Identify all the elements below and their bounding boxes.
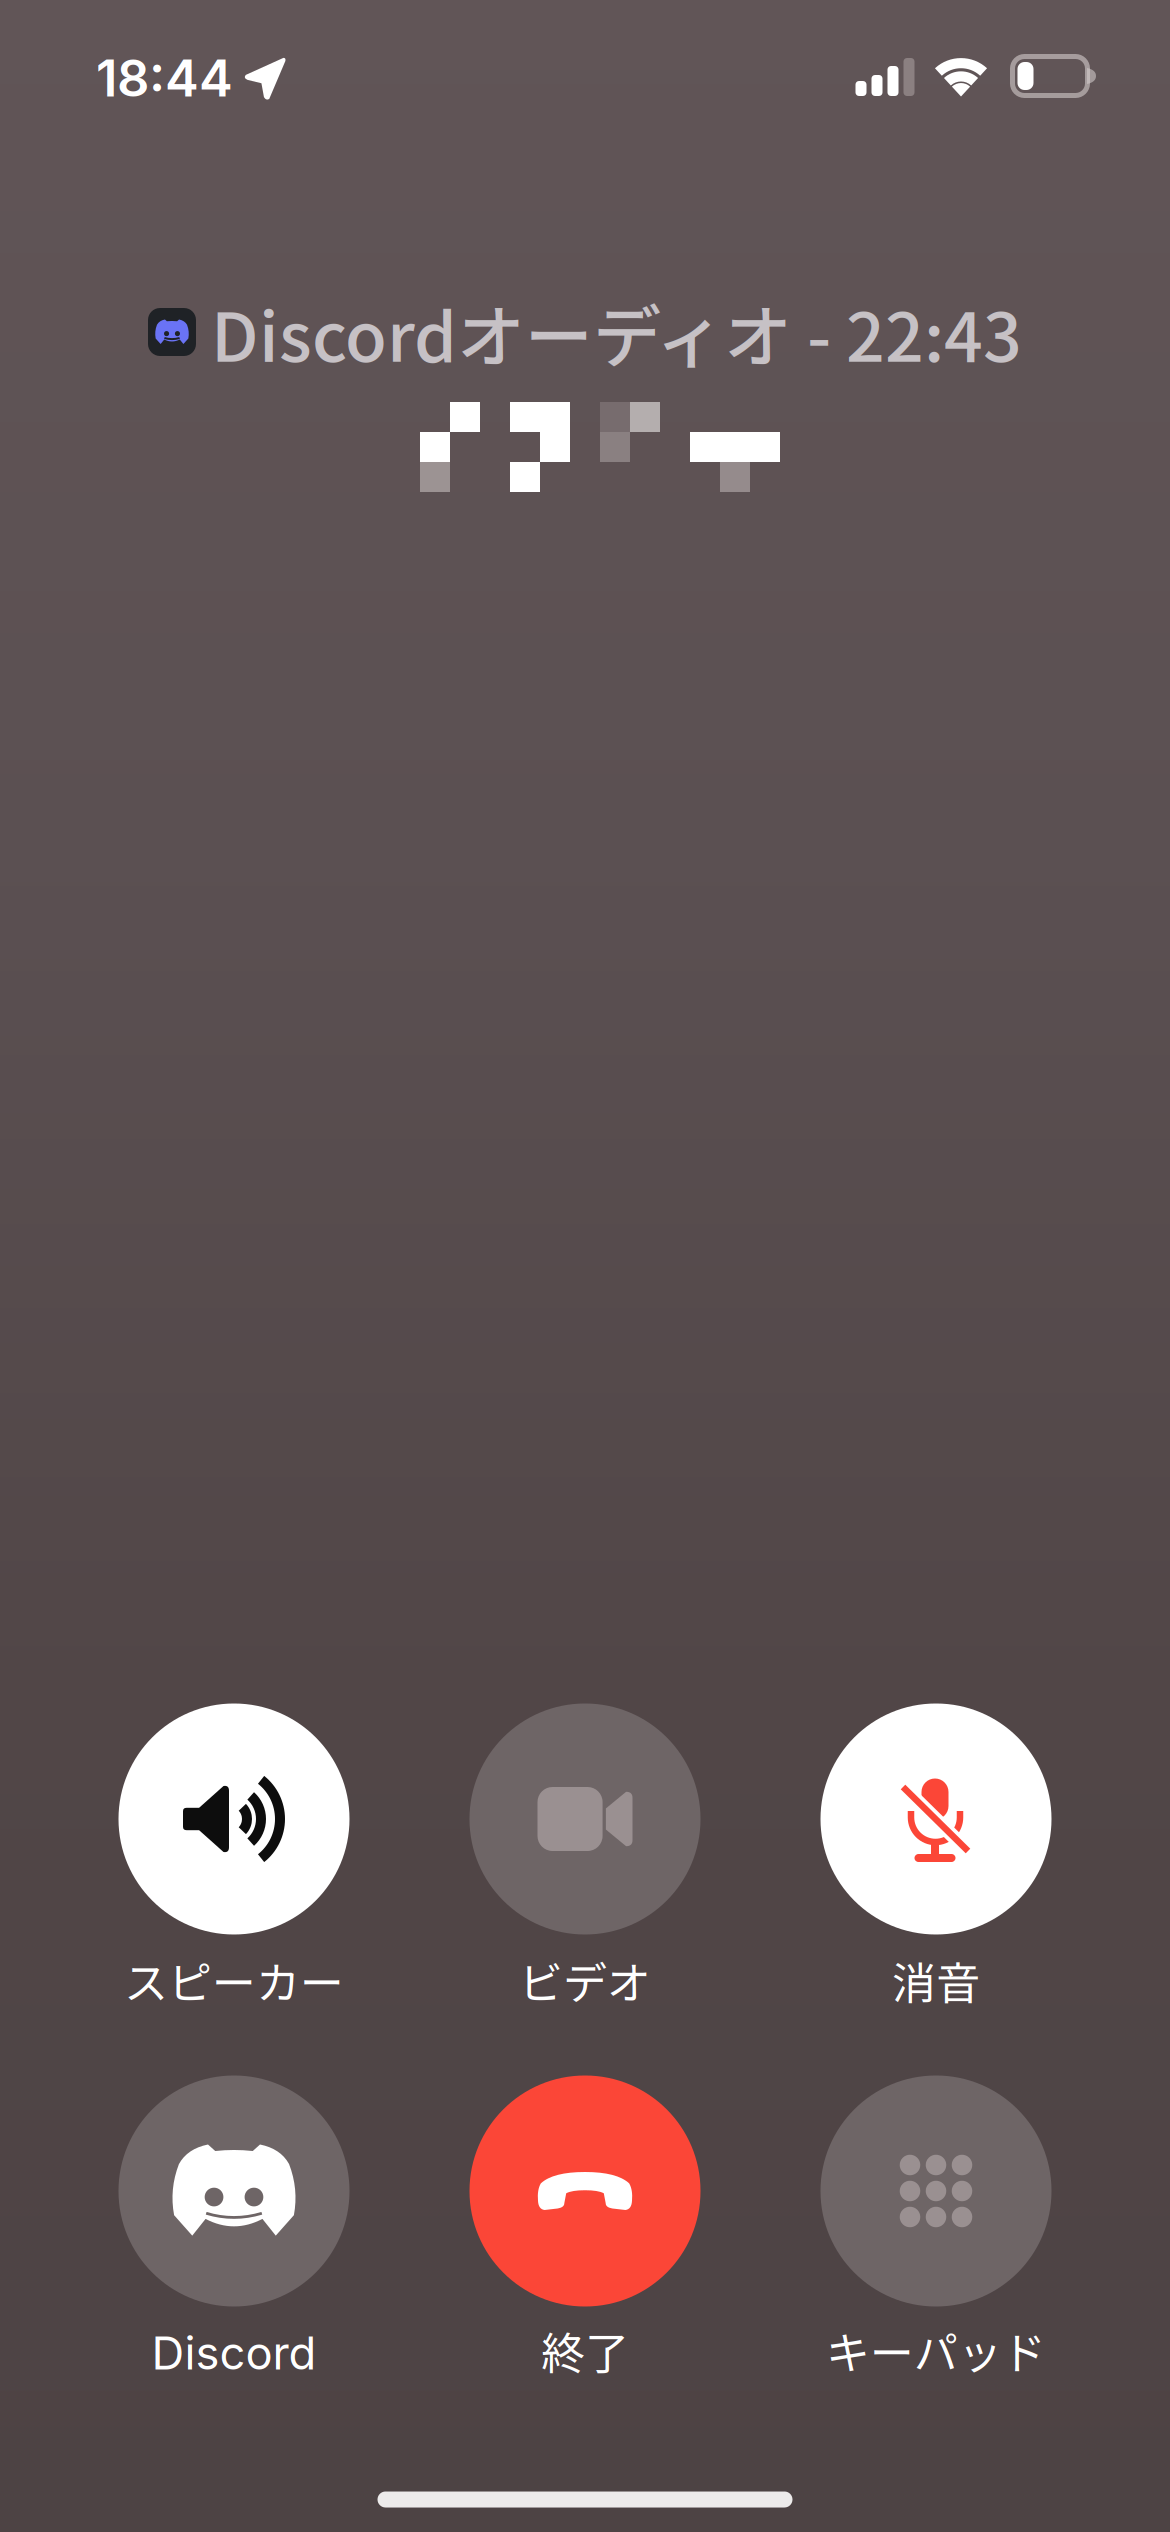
staticText: ビデオ	[519, 1948, 651, 2012]
staticText: スピーカー	[124, 1948, 344, 2012]
button[interactable]	[118, 1703, 349, 1934]
button[interactable]	[820, 1703, 1051, 1934]
staticText: Discord	[151, 2326, 316, 2380]
staticText: キーパッド	[826, 2318, 1046, 2382]
staticText: 18:44	[96, 47, 233, 109]
button[interactable]	[469, 1703, 700, 1934]
staticText: 消音	[892, 1948, 980, 2012]
staticText: Discordオーディオ - 22:43	[211, 283, 1022, 381]
staticText: 終了	[541, 2318, 629, 2382]
button[interactable]	[469, 2075, 700, 2306]
button[interactable]	[118, 2075, 349, 2306]
button[interactable]	[820, 2075, 1051, 2306]
